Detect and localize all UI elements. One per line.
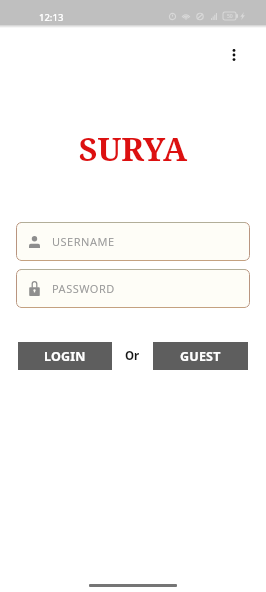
staticText: 50 — [227, 13, 233, 20]
button[interactable]: More options — [218, 39, 249, 70]
staticText: LOGIN — [44, 348, 86, 365]
staticText: Or — [125, 348, 140, 364]
staticText: USERNAME — [52, 234, 115, 249]
staticText: PASSWORD — [52, 281, 115, 296]
button[interactable]: LOGIN — [18, 342, 112, 370]
staticText: SURYA — [0, 127, 266, 171]
staticText: GUEST — [180, 348, 221, 365]
button[interactable]: GUEST — [153, 342, 248, 370]
button[interactable]: USERNAME — [16, 222, 250, 261]
staticText: 12:13 — [39, 11, 64, 24]
button[interactable]: PASSWORD — [16, 269, 250, 308]
